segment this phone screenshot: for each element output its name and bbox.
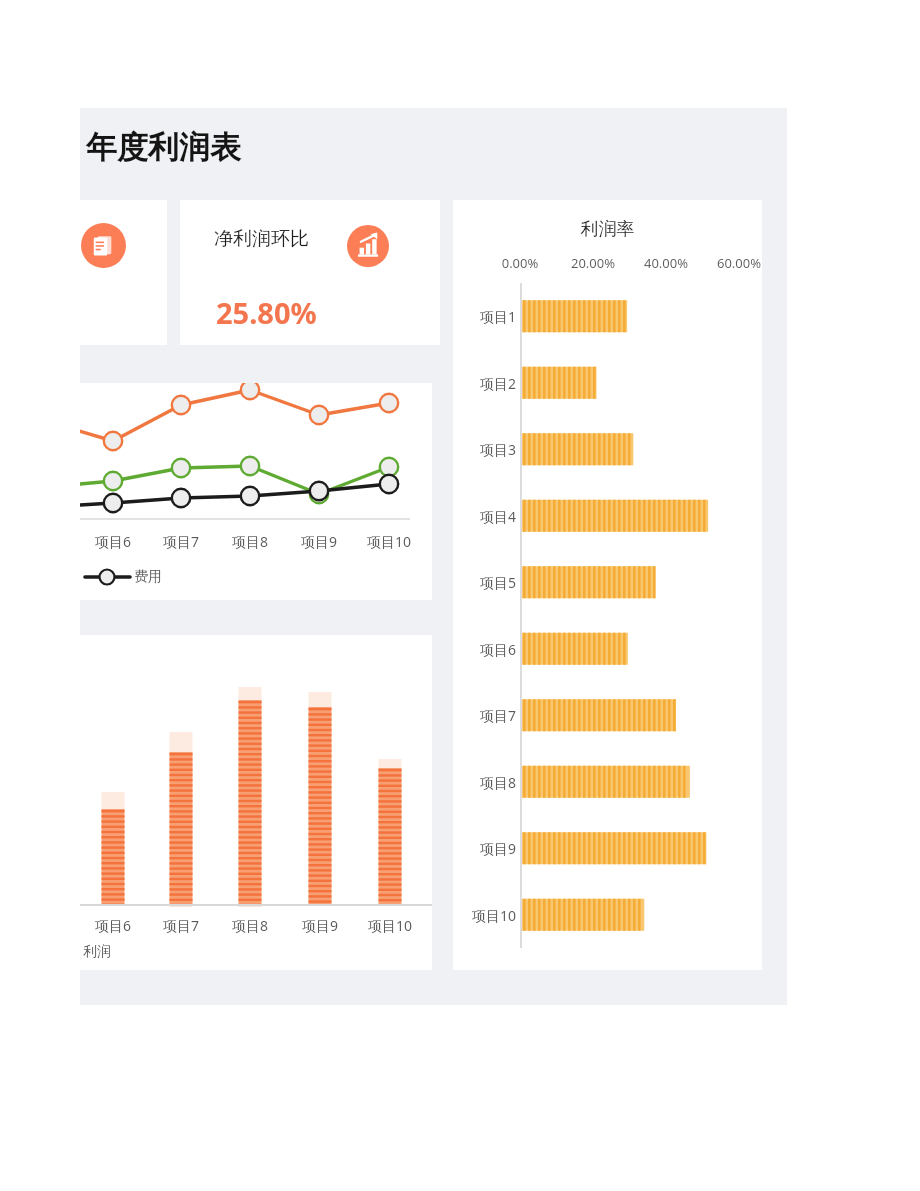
other: Report [81, 223, 126, 268]
staticText: 0.00% [478, 254, 562, 272]
staticText: 项目10 [355, 532, 423, 551]
staticText: 项目9 [459, 839, 516, 858]
staticText: 项目8 [216, 532, 284, 551]
button[interactable]: 项目6 [80, 635, 432, 970]
staticText: 项目3 [459, 440, 516, 459]
staticText: 20.00% [551, 254, 635, 272]
staticText: 项目5 [459, 573, 516, 592]
button[interactable]: 净利润环比 [180, 200, 440, 345]
staticText: 60.00% [697, 254, 781, 272]
staticText: 项目8 [459, 773, 516, 792]
other: Growth chart [347, 225, 389, 267]
staticText: 费用 [134, 568, 162, 586]
staticText: 项目6 [459, 640, 516, 659]
staticText: 项目9 [285, 532, 353, 551]
staticText: 项目10 [356, 916, 424, 935]
staticText: 40.00% [624, 254, 708, 272]
staticText: 项目1 [459, 307, 516, 326]
staticText: 项目7 [147, 916, 215, 935]
button[interactable]: 利润率 [453, 200, 762, 970]
staticText: 项目7 [147, 532, 215, 551]
button[interactable]: 项目6 [80, 383, 432, 600]
staticText: 项目7 [459, 706, 516, 725]
button[interactable]: Report [80, 200, 167, 345]
staticText: 利润率 [453, 218, 762, 241]
staticText: 25.80% [216, 293, 317, 332]
staticText: 项目8 [216, 916, 284, 935]
staticText: 项目2 [459, 374, 516, 393]
staticText: 项目6 [80, 916, 147, 935]
staticText: 项目10 [459, 906, 516, 925]
staticText: 项目9 [286, 916, 354, 935]
staticText: 项目4 [459, 507, 516, 526]
staticText: 项目6 [80, 532, 147, 551]
staticText: 利润 [83, 943, 111, 961]
staticText: 净利润环比 [214, 227, 309, 251]
staticText: 年度利润表 [86, 128, 241, 167]
